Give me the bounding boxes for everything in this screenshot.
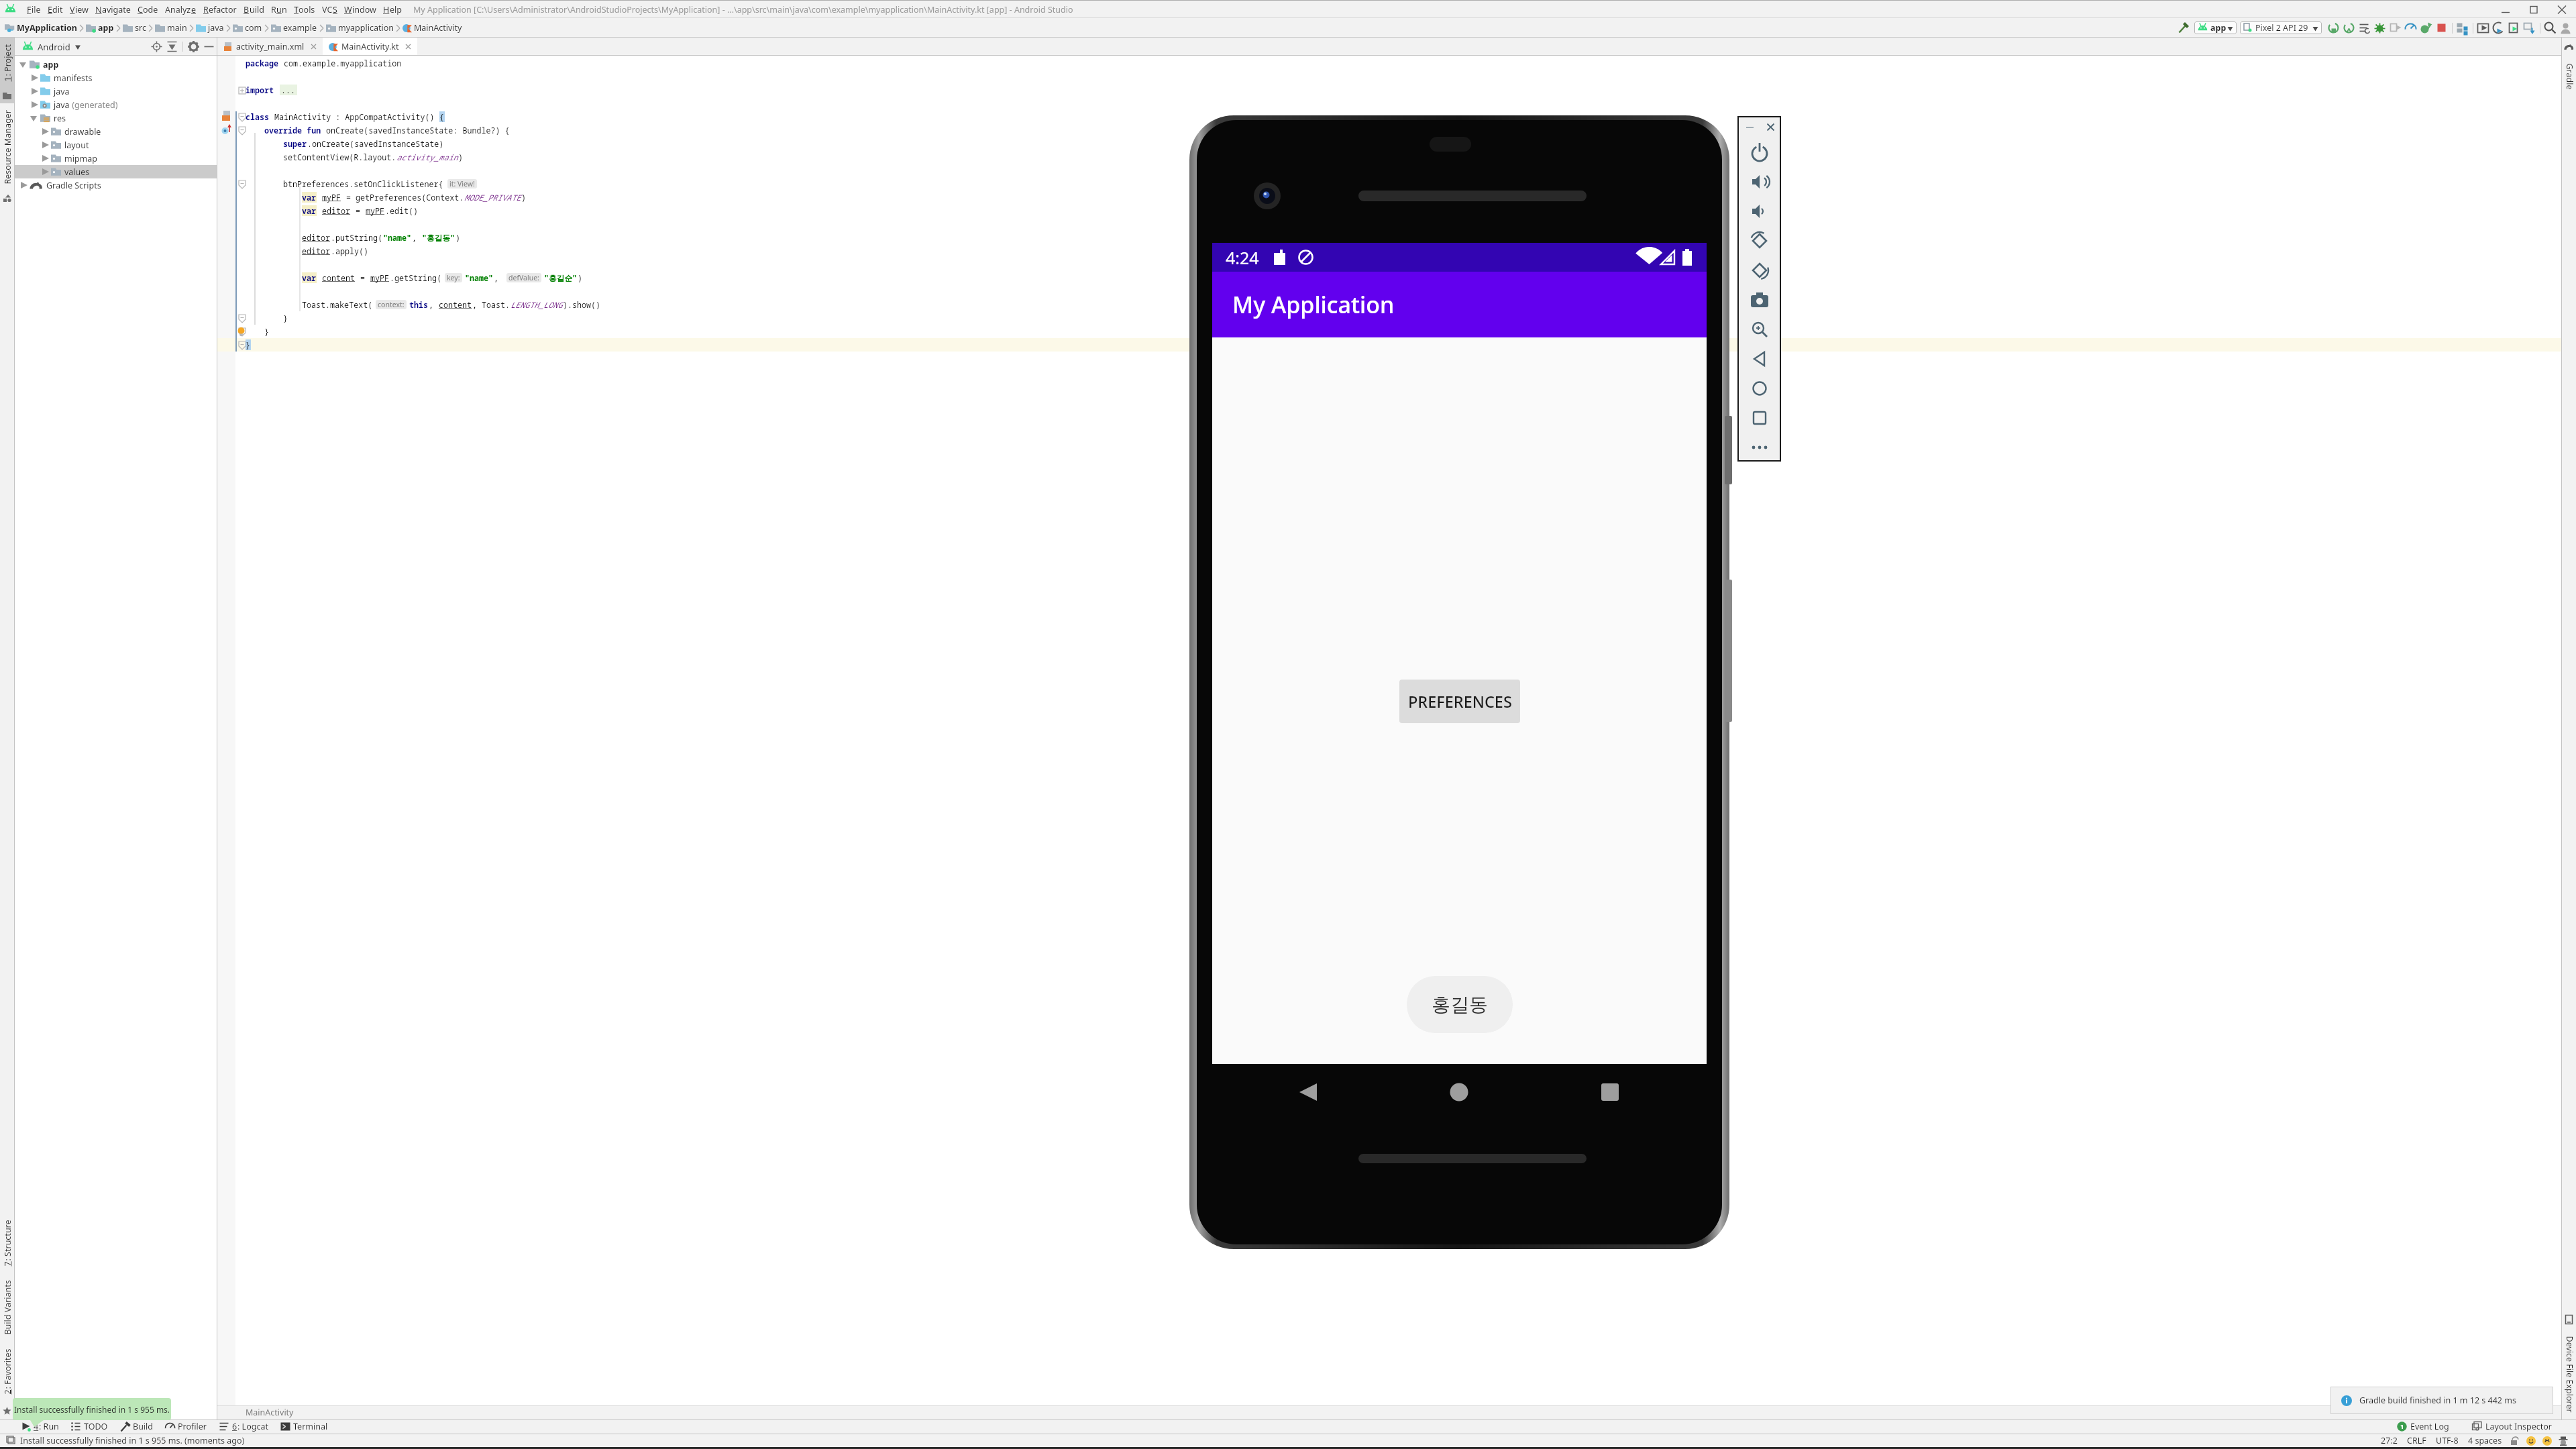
button[interactable]: app (15, 58, 217, 71)
button[interactable]: Sync Project (2491, 20, 2506, 36)
button[interactable]: MainActivity.kt (323, 38, 417, 56)
button[interactable]: 7 (0, 1212, 14, 1273)
button[interactable]: activity_main.xml (217, 38, 323, 56)
button[interactable]: B (240, 4, 268, 15)
button[interactable]: Build (114, 1419, 159, 1434)
button[interactable]: Install successfully finished in 1 s 955… (13, 1398, 171, 1420)
button[interactable]: java (195, 22, 225, 34)
button[interactable]: R (268, 4, 290, 15)
button[interactable]: Profiler (159, 1419, 213, 1434)
button[interactable]: Hide (201, 39, 217, 54)
button[interactable]: Resource Manager (0, 103, 14, 191)
button[interactable]: Profile (2403, 20, 2418, 36)
staticText: Gradle (2564, 63, 2575, 90)
button[interactable]: Rotate left (1738, 226, 1780, 256)
button[interactable]: F (23, 4, 44, 15)
button[interactable]: 2 (0, 1340, 14, 1402)
button[interactable]: Settings (186, 39, 201, 54)
button[interactable]: Run (2326, 20, 2341, 36)
button[interactable]: H (380, 4, 405, 15)
button[interactable]: app (2194, 21, 2237, 34)
button[interactable]: myapplication (325, 22, 394, 34)
button[interactable]: N (92, 4, 134, 15)
button[interactable]: Close (1762, 119, 1778, 135)
button[interactable]: Minimize (2491, 1, 2520, 18)
button[interactable]: Attach debugger (2387, 20, 2403, 36)
button[interactable]: PREFERENCES (1399, 680, 1520, 723)
button[interactable]: mipmap (15, 152, 217, 165)
button[interactable]: C (134, 4, 162, 15)
staticText: E (48, 4, 52, 15)
button[interactable]: Power (1738, 138, 1780, 167)
button[interactable]: Home (1738, 374, 1780, 403)
button[interactable]: Edit configurations (2357, 20, 2372, 36)
button[interactable]: Gradle Scripts (15, 178, 217, 192)
button[interactable]: Minimize (1741, 119, 1758, 135)
staticText: } (264, 326, 270, 337)
staticText: "name" (465, 272, 494, 283)
button[interactable]: MyApplication (4, 22, 78, 34)
button[interactable]: Make project (2176, 20, 2191, 36)
button[interactable]: 1 (0, 38, 14, 87)
button[interactable]: com (232, 22, 263, 34)
button[interactable]: src (122, 22, 147, 34)
button[interactable]: W (341, 4, 380, 15)
button[interactable]: Device File Explorer (2562, 1328, 2576, 1419)
button[interactable]: Pixel 2 API 29 (2240, 21, 2322, 34)
button[interactable]: Back (1738, 344, 1780, 374)
button[interactable]: 6 (213, 1419, 274, 1434)
button[interactable]: res (15, 111, 217, 125)
button[interactable]: Take screenshot (1738, 285, 1780, 315)
button[interactable]: Zoom (1738, 315, 1780, 344)
button[interactable]: E (44, 4, 66, 15)
button[interactable]: Debug (2372, 20, 2387, 36)
button[interactable]: TODO (65, 1419, 114, 1434)
button[interactable]: Select opened file (149, 39, 164, 54)
button[interactable]: layout (15, 138, 217, 152)
button[interactable]: main (154, 22, 188, 34)
button[interactable]: Volume down (1738, 197, 1780, 226)
button[interactable]: VC (319, 4, 341, 15)
button[interactable]: Layout Inspector (2468, 1421, 2556, 1432)
button[interactable]: java (15, 85, 217, 98)
button[interactable]: Close (2548, 1, 2576, 18)
button[interactable]: Analyz (162, 4, 200, 15)
button[interactable]: Back (1275, 1059, 1342, 1126)
button[interactable]: Terminal (274, 1419, 334, 1434)
button[interactable]: MainActivity (402, 22, 463, 34)
button[interactable]: Run with coverage (2341, 20, 2357, 36)
button[interactable]: Account (2558, 20, 2573, 36)
button[interactable]: 홍길동 (1407, 976, 1513, 1033)
button[interactable]: Search (2542, 20, 2558, 36)
button[interactable]: Apply changes (2418, 20, 2434, 36)
button[interactable]: Rotate right (1738, 256, 1780, 285)
button[interactable]: Build Variants (0, 1273, 14, 1340)
button[interactable]: java (15, 98, 217, 111)
button[interactable]: Home (1426, 1059, 1493, 1126)
button[interactable]: Recents (1738, 403, 1780, 433)
button[interactable]: app (85, 22, 115, 34)
button[interactable]: Recents (1576, 1059, 1644, 1126)
button[interactable]: Collapse all (164, 39, 180, 54)
staticText: myPF (322, 192, 341, 203)
button[interactable]: 4 (15, 1419, 65, 1434)
button[interactable]: T (290, 4, 319, 15)
button[interactable]: values (15, 165, 217, 178)
button[interactable]: R (200, 4, 240, 15)
button[interactable]: example (270, 22, 318, 34)
button[interactable]: More (1738, 433, 1780, 462)
button[interactable]: drawable (15, 125, 217, 138)
button[interactable]: AVD Manager (2475, 20, 2491, 36)
button[interactable]: V (66, 4, 92, 15)
button[interactable]: manifests (15, 71, 217, 85)
button[interactable]: Volume up (1738, 167, 1780, 197)
button[interactable]: Download (2522, 20, 2537, 36)
button[interactable]: Maximize (2520, 1, 2548, 18)
button[interactable]: Stop (2434, 20, 2449, 36)
button[interactable]: Gradle (2562, 55, 2576, 97)
button[interactable]: 1 (2393, 1421, 2453, 1432)
button[interactable]: SDK Manager (2455, 20, 2470, 36)
button[interactable]: Run on device (2506, 20, 2522, 36)
